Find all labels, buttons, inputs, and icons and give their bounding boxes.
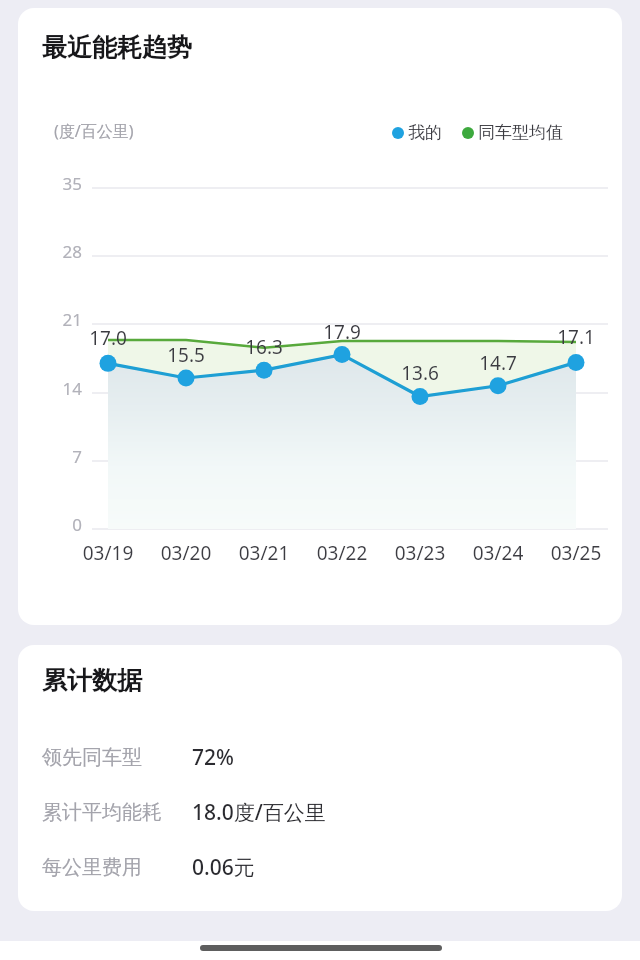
button[interactable]: 每公里费用 — [18, 848, 622, 886]
staticText: 0.06元 — [192, 853, 255, 882]
staticText: 累计数据 — [42, 665, 142, 696]
staticText: 03/25 — [536, 540, 616, 566]
button[interactable]: 最近能耗趋势 — [18, 8, 622, 625]
staticText: 03/21 — [224, 540, 304, 566]
staticText: 17.9 — [302, 319, 382, 345]
staticText: 72% — [192, 743, 234, 772]
staticText: 03/24 — [458, 540, 538, 566]
staticText: 7 — [54, 445, 82, 468]
staticText: 同车型均值 — [478, 122, 563, 143]
staticText: 13.6 — [380, 360, 460, 386]
staticText: 03/22 — [302, 540, 382, 566]
staticText: 16.3 — [224, 334, 304, 360]
staticText: 我的 — [408, 122, 442, 143]
staticText: 21 — [54, 308, 82, 331]
staticText: 17.1 — [536, 324, 616, 350]
staticText: 18.0度/百公里 — [192, 798, 326, 827]
button[interactable]: 累计平均能耗 — [18, 793, 622, 831]
button[interactable]: 领先同车型 — [18, 738, 622, 776]
staticText: (度/百公里) — [54, 120, 134, 142]
staticText: 17.0 — [68, 325, 148, 351]
staticText: 领先同车型 — [42, 745, 142, 770]
staticText: 03/20 — [146, 540, 226, 566]
staticText: 0 — [54, 513, 82, 536]
staticText: 35 — [54, 172, 82, 195]
button[interactable]: 累计数据 — [18, 645, 622, 911]
staticText: 14 — [54, 377, 82, 400]
staticText: 28 — [54, 240, 82, 263]
staticText: 最近能耗趋势 — [42, 32, 192, 63]
staticText: 每公里费用 — [42, 855, 142, 880]
staticText: 累计平均能耗 — [42, 800, 162, 825]
staticText: 15.5 — [146, 342, 226, 368]
staticText: 03/19 — [68, 540, 148, 566]
staticText: 03/23 — [380, 540, 460, 566]
staticText: 14.7 — [458, 350, 538, 376]
